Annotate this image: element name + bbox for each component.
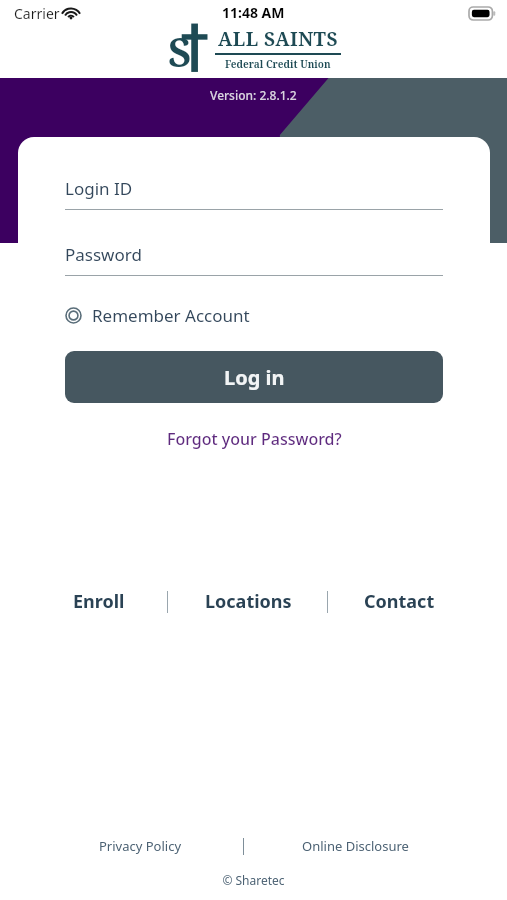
staticText: Locations: [205, 589, 292, 614]
staticText: Password: [65, 243, 142, 266]
button[interactable]: Password: [65, 243, 443, 276]
button[interactable]: Contact: [358, 585, 441, 618]
button[interactable]: Remember Account: [65, 304, 250, 327]
button[interactable]: Locations: [199, 585, 298, 618]
staticText: ALL SAINTS: [218, 26, 339, 52]
staticText: Log in: [224, 364, 285, 391]
button[interactable]: Forgot your Password?: [157, 424, 352, 454]
button[interactable]: Log in: [65, 351, 443, 403]
staticText: Privacy Policy: [99, 837, 182, 855]
staticText: Online Disclosure: [302, 837, 409, 855]
staticText: © Sharetec: [222, 872, 285, 888]
button[interactable]: Enroll: [67, 585, 131, 618]
staticText: Carrier: [14, 4, 60, 23]
staticText: Version: 2.8.1.2: [210, 87, 297, 103]
staticText: Contact: [364, 589, 435, 614]
staticText: Forgot your Password?: [167, 428, 342, 450]
button[interactable]: Login ID: [65, 177, 443, 210]
staticText: Login ID: [65, 177, 133, 200]
staticText: Enroll: [73, 589, 125, 614]
staticText: Federal Credit Union: [225, 57, 331, 71]
staticText: 11:48 AM: [222, 3, 285, 22]
button[interactable]: Privacy Policy: [93, 834, 188, 858]
staticText: Remember Account: [92, 304, 250, 327]
button[interactable]: Online Disclosure: [296, 834, 415, 858]
staticText: S: [168, 24, 192, 76]
